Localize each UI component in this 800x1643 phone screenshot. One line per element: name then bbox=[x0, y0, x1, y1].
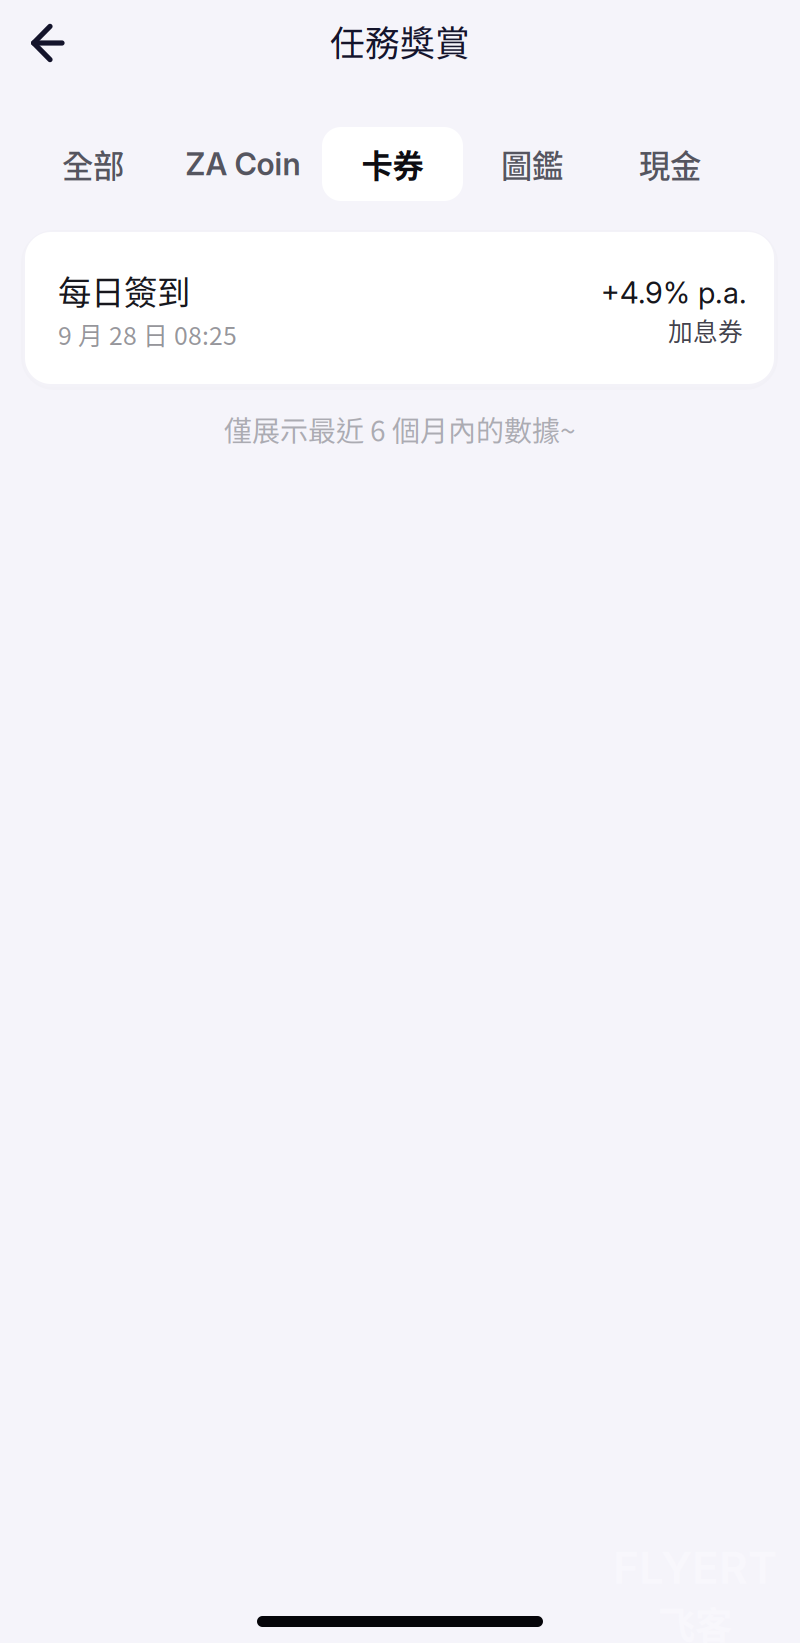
button[interactable]: ZA Coin bbox=[180, 127, 306, 201]
button[interactable]: 全部 bbox=[48, 127, 138, 201]
staticText: ZA Coin bbox=[185, 145, 300, 182]
button[interactable]: 圖鑑 bbox=[487, 127, 577, 201]
staticText: 現金 bbox=[639, 141, 701, 187]
staticText: 每日簽到 bbox=[58, 266, 190, 314]
button[interactable]: 卡券 bbox=[322, 127, 463, 201]
staticText: 任務獎賞 bbox=[330, 16, 470, 66]
staticText: 僅展示最近 6 個月內的數據~ bbox=[224, 409, 576, 449]
staticText: 9 月 28 日 08:25 bbox=[58, 316, 237, 352]
staticText: 卡券 bbox=[361, 141, 423, 187]
button[interactable]: 現金 bbox=[625, 127, 715, 201]
staticText: 圖鑑 bbox=[501, 141, 563, 187]
staticText: 加息券 bbox=[668, 312, 743, 348]
staticText: +4.9% p.a. bbox=[601, 275, 747, 310]
button[interactable]: Back bbox=[3, 5, 87, 81]
button[interactable]: 每日簽到 bbox=[25, 232, 774, 384]
staticText: 全部 bbox=[62, 141, 124, 187]
